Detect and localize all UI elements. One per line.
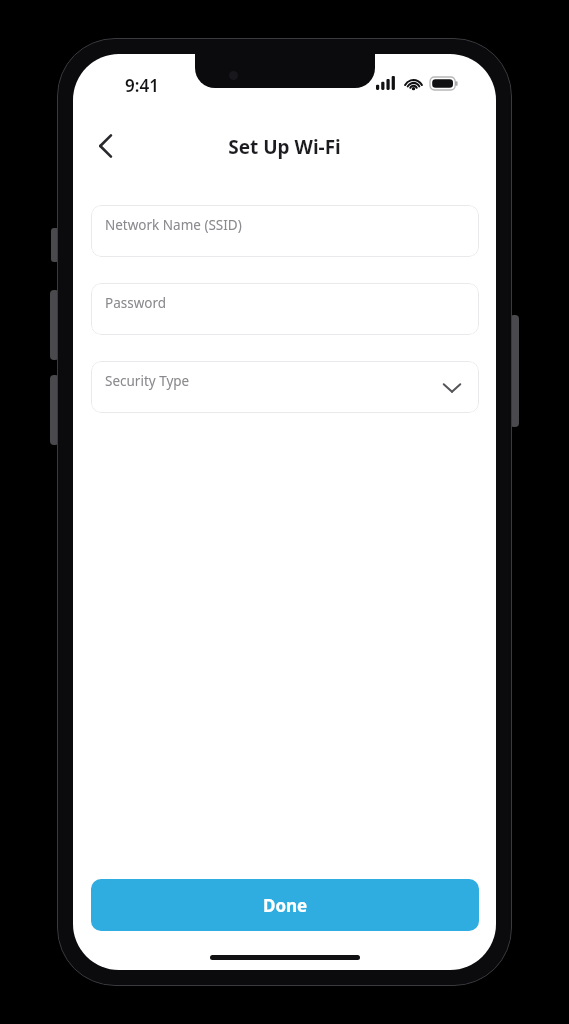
staticText: Password xyxy=(105,294,167,312)
staticText: 9:41 xyxy=(125,74,159,97)
button[interactable]: Back xyxy=(81,122,129,170)
staticText: Done xyxy=(263,894,308,917)
staticText: Network Name (SSID) xyxy=(105,216,242,234)
button[interactable]: Done xyxy=(91,879,479,931)
button[interactable]: Password xyxy=(91,283,479,335)
button[interactable]: Network Name (SSID) xyxy=(91,205,479,257)
staticText: Security Type xyxy=(105,372,190,390)
button[interactable]: Security Type xyxy=(91,361,479,413)
staticText: Set Up Wi-Fi xyxy=(73,134,496,160)
